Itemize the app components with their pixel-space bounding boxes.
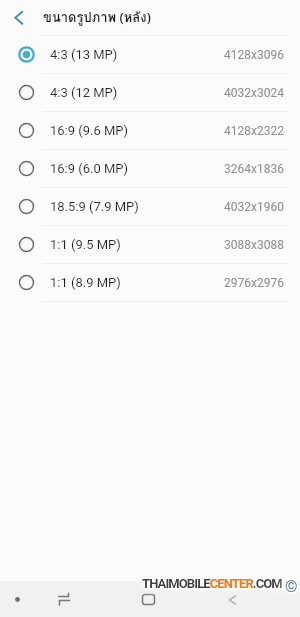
staticText: © xyxy=(286,576,299,595)
staticText: THAIMOBILECENTER.COM xyxy=(141,578,281,593)
staticText: 4:3 (13 MP) xyxy=(50,47,118,62)
staticText: © xyxy=(285,578,298,597)
staticText: 16:9 (6.0 MP) xyxy=(50,161,129,176)
staticText: 1:1 (9.5 MP) xyxy=(50,237,121,252)
staticText: 4:3 (12 MP) xyxy=(50,85,118,100)
staticText: 3264x1836 xyxy=(224,162,284,176)
staticText: © xyxy=(285,576,298,595)
button[interactable]: 18.5:9 (7.9 MP) xyxy=(0,188,300,225)
staticText: THAIMOBILECENTER.COM xyxy=(141,575,281,590)
staticText: THAIMOBILECENTER.COM xyxy=(142,578,282,593)
staticText: 4128x2322 xyxy=(224,124,284,138)
staticText: 2976x2976 xyxy=(224,276,284,290)
staticText: 4032x1960 xyxy=(224,200,284,214)
staticText: © xyxy=(284,577,297,596)
button[interactable]: 4:3 (12 MP) xyxy=(0,74,300,111)
staticText: 4128x3096 xyxy=(224,48,284,62)
button[interactable]: 16:9 (6.0 MP) xyxy=(0,150,300,187)
button[interactable]: 4:3 (13 MP) xyxy=(0,36,300,73)
staticText: © xyxy=(284,576,297,595)
staticText: THAIMOBILECENTER.COM xyxy=(144,576,284,591)
staticText: 18.5:9 (7.9 MP) xyxy=(50,199,139,214)
button[interactable] xyxy=(0,0,36,35)
button[interactable]: 16:9 (9.6 MP) xyxy=(0,112,300,149)
staticText: 1:1 (8.9 MP) xyxy=(50,275,121,290)
staticText: © xyxy=(286,578,299,597)
staticText: THAIMOBILECENTER.COM xyxy=(141,576,281,591)
staticText: THAIMOBILECENTER.COM xyxy=(142,575,282,590)
staticText: © xyxy=(286,577,299,596)
staticText: ขนาดรูปภาพ (หลัง) xyxy=(43,7,151,28)
staticText: THAIMOBILECENTER.COM xyxy=(142,576,282,591)
button[interactable] xyxy=(100,581,200,617)
staticText: THAIMOBILECENTER.COM xyxy=(144,575,284,590)
staticText: © xyxy=(285,577,298,596)
staticText: 16:9 (9.6 MP) xyxy=(50,123,129,138)
button[interactable]: 1:1 (8.9 MP) xyxy=(0,264,300,301)
staticText: 3088x3088 xyxy=(224,238,284,252)
staticText: THAIMOBILECENTER.COM xyxy=(144,578,284,593)
staticText: © xyxy=(284,578,297,597)
button[interactable]: 1:1 (9.5 MP) xyxy=(0,226,300,263)
staticText: 4032x3024 xyxy=(224,86,284,100)
button[interactable] xyxy=(200,581,300,617)
button[interactable] xyxy=(0,581,100,617)
